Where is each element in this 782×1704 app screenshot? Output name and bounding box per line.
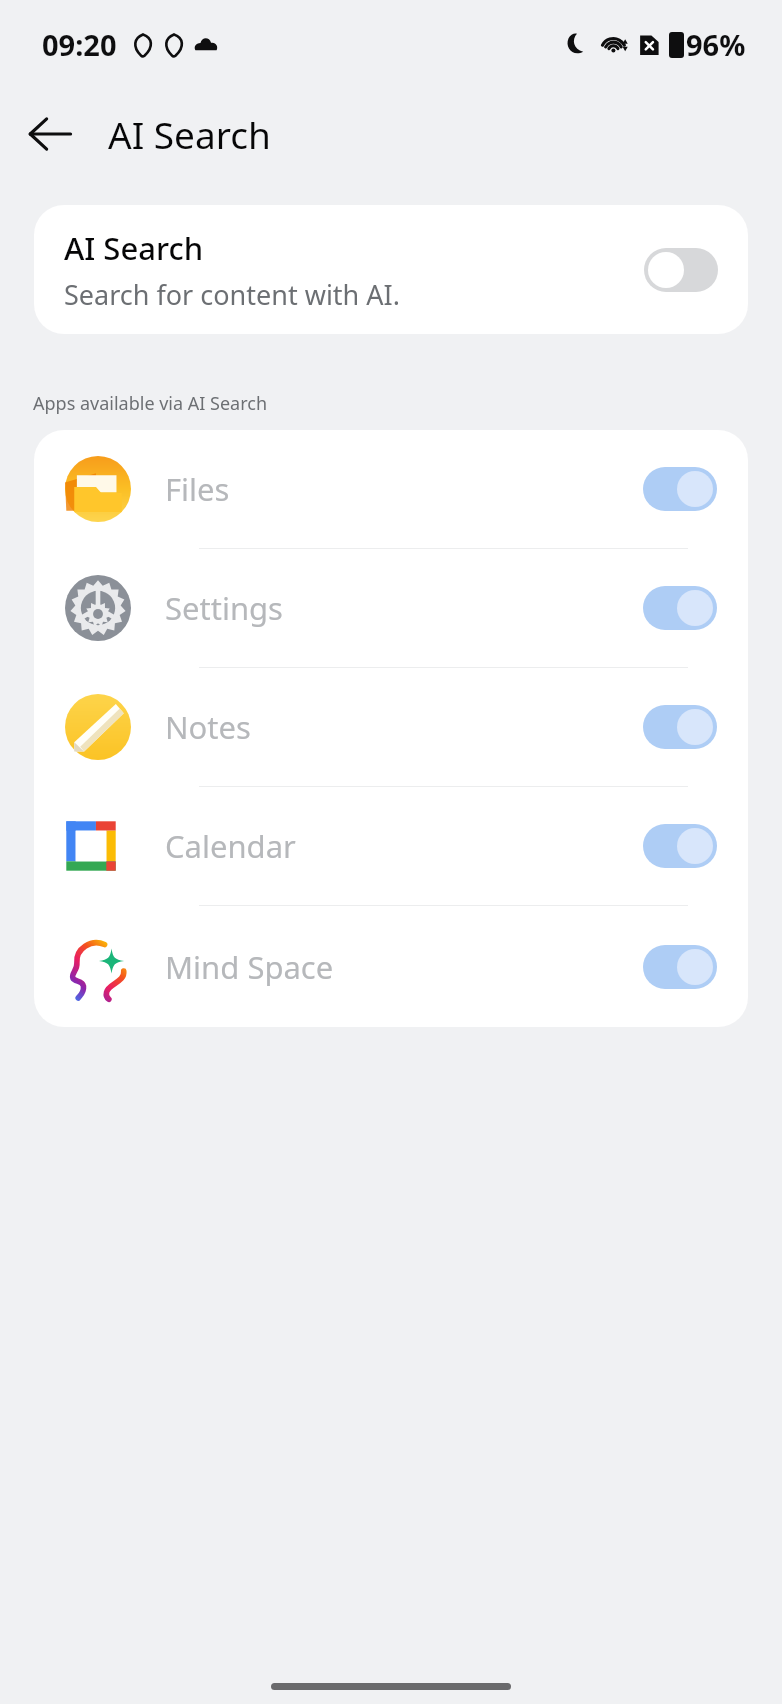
button[interactable]: Toggle false [644,248,718,292]
button[interactable]: Toggle true [643,586,717,630]
button[interactable]: Toggle true [643,467,717,511]
staticText: Search for content with AI. [64,276,400,313]
button[interactable]: Mind Space [34,906,748,1027]
staticText: AI Search [108,109,271,159]
button[interactable]: Calendar [34,787,748,905]
button[interactable]: Toggle true [643,824,717,868]
button[interactable]: Notes [34,668,748,786]
button[interactable]: Back [17,101,83,167]
staticText: Apps available via AI Search [33,391,268,416]
staticText: Mind Space [165,946,643,988]
button[interactable]: Toggle true [643,705,717,749]
staticText: Notes [165,706,643,748]
staticText: 09:20 [42,25,117,64]
button[interactable]: Settings [34,549,748,667]
staticText: Files [165,468,643,510]
staticText: Settings [165,587,643,629]
button[interactable]: Files [34,430,748,548]
button[interactable]: AI Search [34,205,748,334]
staticText: Calendar [165,825,643,867]
button[interactable]: Toggle true [643,945,717,989]
staticText: 96% [686,25,746,64]
staticText: AI Search [64,227,204,269]
